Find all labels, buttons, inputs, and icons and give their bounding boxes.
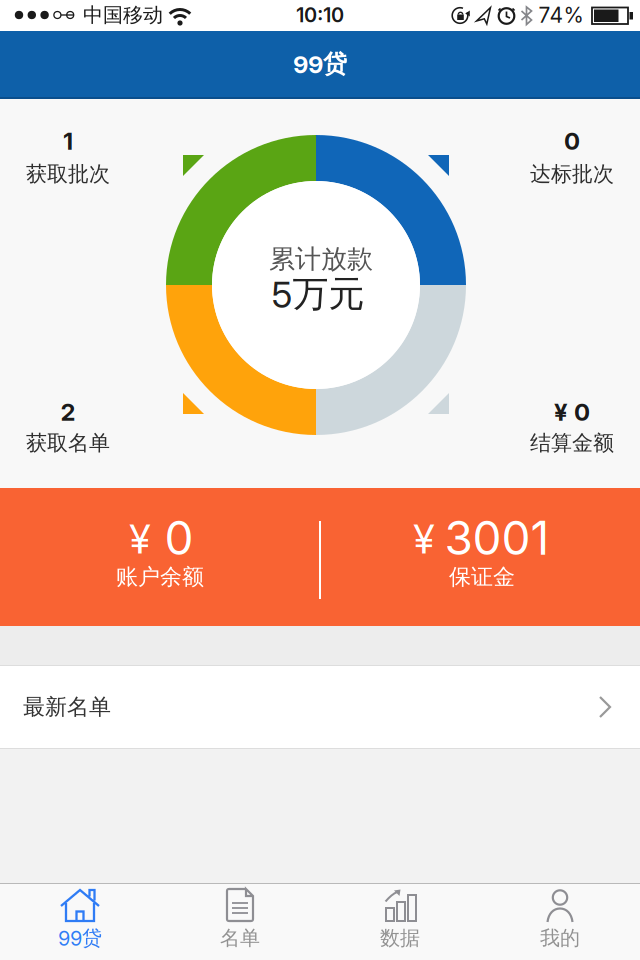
staticText: 获取名单 <box>26 430 110 456</box>
staticText: ¥ <box>413 515 434 563</box>
staticText: 保证金 <box>449 563 515 591</box>
staticText: 5万元 <box>271 271 364 317</box>
staticText: 名单 <box>220 925 260 951</box>
staticText: 累计放款 <box>269 243 373 275</box>
staticText: 获取批次 <box>26 161 110 187</box>
staticText: 3001 <box>444 510 549 566</box>
staticText: 中国移动 <box>83 2 163 28</box>
staticText: 数据 <box>380 925 420 951</box>
staticText: 0 <box>164 510 193 566</box>
staticText: 1 <box>63 126 73 155</box>
button[interactable]: 我的 <box>480 884 640 960</box>
staticText: ¥ 0 <box>554 397 590 426</box>
staticText: 账户余额 <box>116 563 204 591</box>
staticText: 最新名单 <box>23 693 111 721</box>
button[interactable]: 数据 <box>320 884 480 960</box>
staticText: 结算金额 <box>530 430 614 456</box>
staticText: 99贷 <box>293 49 347 79</box>
staticText: 我的 <box>540 925 580 951</box>
staticText: 达标批次 <box>530 161 614 187</box>
staticText: ¥ <box>129 515 150 563</box>
staticText: 99贷 <box>58 925 102 951</box>
staticText: 0 <box>564 126 580 155</box>
button[interactable]: 名单 <box>160 884 320 960</box>
button[interactable]: 99贷 <box>0 884 160 960</box>
staticText: 10:10 <box>296 3 344 27</box>
staticText: 74% <box>538 2 583 28</box>
button[interactable]: 最新名单 <box>0 666 640 748</box>
staticText: 2 <box>60 397 75 426</box>
